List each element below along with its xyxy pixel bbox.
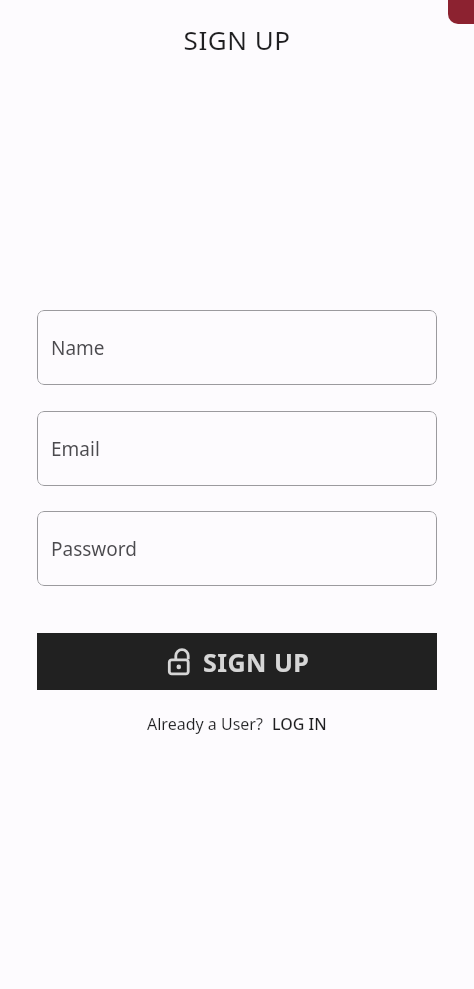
button[interactable]: Email (37, 411, 437, 486)
staticText: Already a User? (147, 713, 263, 735)
staticText: LOG IN (272, 713, 327, 735)
button[interactable]: Already a User? (37, 713, 437, 735)
staticText: Email (51, 436, 100, 462)
button[interactable]: Password (37, 511, 437, 586)
other: Logo badge (448, 0, 474, 24)
staticText: SIGN UP (0, 22, 474, 57)
button[interactable]: Name (37, 310, 437, 385)
staticText: SIGN UP (203, 645, 310, 679)
staticText: Password (51, 536, 137, 562)
button[interactable]: SIGN UP (37, 633, 437, 690)
staticText: Name (51, 335, 105, 361)
